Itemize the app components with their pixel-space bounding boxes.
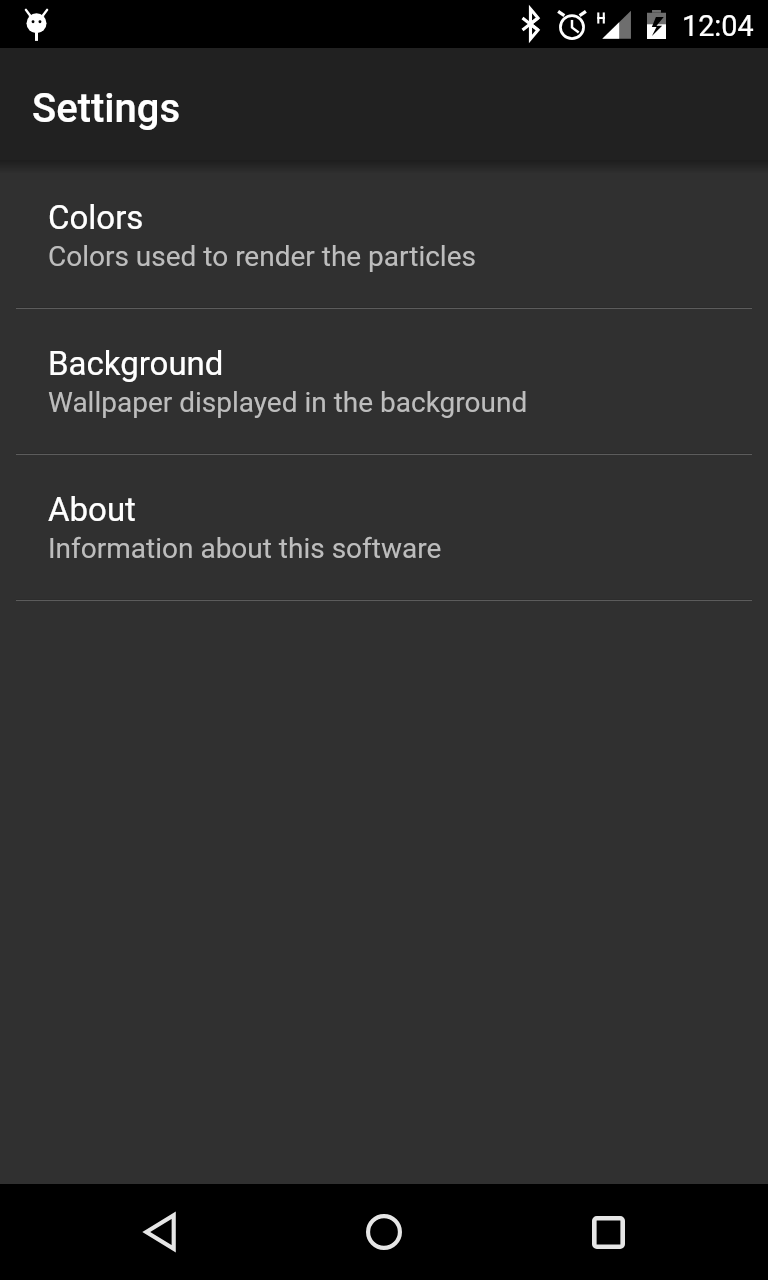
button[interactable]: Recents	[552, 1184, 664, 1280]
staticText: Colors used to render the particles	[48, 240, 476, 273]
staticText: About	[48, 490, 136, 529]
button[interactable]: Home	[328, 1184, 440, 1280]
staticText: Wallpaper displayed in the background	[48, 386, 528, 419]
button[interactable]: Colors	[0, 163, 768, 309]
staticText: Background	[48, 344, 224, 383]
button[interactable]: Background	[0, 309, 768, 455]
staticText: 12:04	[682, 9, 754, 43]
staticText: Colors	[48, 198, 144, 237]
button[interactable]: Back	[104, 1184, 216, 1280]
staticText: Information about this software	[48, 532, 442, 565]
staticText: Settings	[32, 85, 181, 132]
button[interactable]: About	[0, 455, 768, 601]
